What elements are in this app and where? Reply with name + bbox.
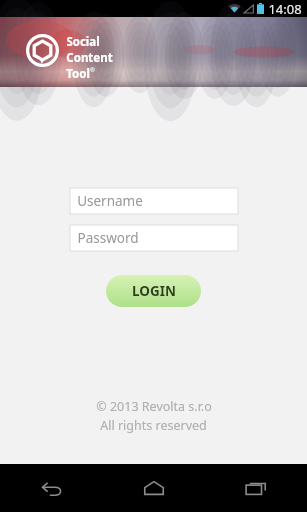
staticText: All rights reserved bbox=[100, 417, 207, 434]
button[interactable]: Recent apps bbox=[205, 464, 307, 512]
staticText: 14:08 bbox=[268, 0, 302, 17]
staticText: Content bbox=[66, 50, 113, 66]
staticText: Username bbox=[77, 192, 143, 210]
button[interactable]: Password bbox=[70, 225, 238, 251]
button[interactable]: LOGIN bbox=[106, 275, 201, 307]
button[interactable]: Home bbox=[103, 464, 205, 512]
staticText: Tool bbox=[66, 66, 90, 82]
staticText: ® bbox=[90, 66, 95, 74]
staticText: Password bbox=[77, 229, 139, 247]
staticText: © 2013 Revolta s.r.o bbox=[96, 398, 212, 415]
button[interactable]: Back bbox=[0, 464, 103, 512]
staticText: LOGIN bbox=[132, 282, 176, 300]
button[interactable]: Username bbox=[70, 188, 238, 214]
staticText: Social bbox=[66, 34, 100, 50]
